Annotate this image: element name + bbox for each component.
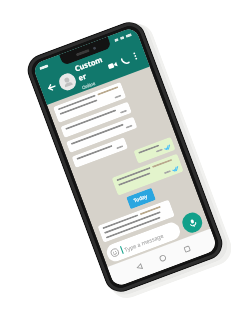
button[interactable]: Contact photo xyxy=(57,71,78,93)
button[interactable]: More options xyxy=(129,50,142,62)
button[interactable]: Recent apps xyxy=(179,241,195,257)
button[interactable]: Type a message xyxy=(104,220,183,264)
button[interactable] xyxy=(133,137,176,164)
staticText: Today xyxy=(133,193,149,204)
staticText: Type a message xyxy=(123,232,165,253)
button[interactable]: Back xyxy=(44,79,60,95)
button[interactable]: Customer xyxy=(73,54,111,90)
button[interactable]: Call xyxy=(116,52,133,69)
button[interactable]: Video call xyxy=(104,57,121,73)
button[interactable] xyxy=(97,199,175,243)
button[interactable]: Today xyxy=(126,188,156,209)
button[interactable] xyxy=(66,116,137,153)
button[interactable] xyxy=(60,101,132,138)
staticText: Customer xyxy=(73,54,108,83)
button[interactable]: Back xyxy=(132,259,147,275)
button[interactable] xyxy=(71,137,128,168)
button[interactable] xyxy=(111,153,184,196)
button[interactable]: Send voice message xyxy=(179,210,205,235)
staticText: Online xyxy=(81,80,96,90)
button[interactable]: Home xyxy=(155,250,170,266)
button[interactable] xyxy=(53,82,126,123)
